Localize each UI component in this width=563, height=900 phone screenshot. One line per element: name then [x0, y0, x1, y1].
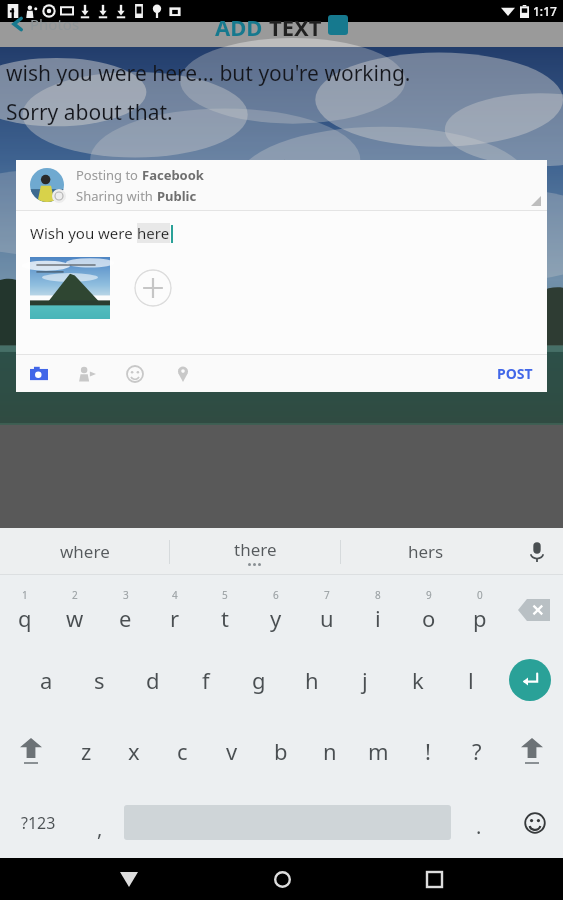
staticText: POST: [497, 364, 533, 383]
staticText: Facebook: [142, 166, 204, 184]
staticText: u: [320, 603, 334, 633]
button[interactable]: 6: [250, 575, 301, 645]
button[interactable]: 5: [200, 575, 250, 645]
staticText: ,: [97, 815, 103, 842]
button[interactable]: POST: [497, 355, 533, 392]
staticText: y: [270, 603, 282, 633]
button[interactable]: !: [403, 715, 452, 787]
staticText: 3: [123, 588, 129, 602]
staticText: c: [177, 736, 188, 766]
button[interactable]: l: [444, 645, 497, 715]
staticText: 6: [273, 588, 279, 602]
staticText: e: [119, 603, 132, 633]
button[interactable]: ,: [76, 787, 124, 858]
staticText: n: [323, 736, 337, 766]
button[interactable]: h: [285, 645, 338, 715]
staticText: l: [468, 665, 474, 695]
button[interactable]: Recent apps: [410, 858, 458, 900]
button[interactable]: [30, 257, 110, 319]
button[interactable]: d: [126, 645, 179, 715]
button[interactable]: Home: [258, 858, 306, 900]
staticText: hers: [408, 540, 444, 563]
button[interactable]: g: [232, 645, 285, 715]
staticText: Sharing with: [76, 187, 157, 205]
staticText: where: [60, 540, 110, 563]
button[interactable]: Posting to: [16, 160, 547, 210]
button[interactable]: Feeling: [122, 361, 148, 387]
button[interactable]: there: [170, 528, 340, 575]
staticText: a: [40, 665, 53, 695]
button[interactable]: x: [110, 715, 158, 787]
button[interactable]: Tag people: [74, 361, 100, 387]
staticText: 1: [22, 588, 28, 602]
staticText: k: [412, 665, 424, 695]
button[interactable]: Shift: [0, 715, 62, 787]
button[interactable]: ?123: [0, 787, 76, 858]
button[interactable]: v: [207, 715, 256, 787]
button[interactable]: Enter: [497, 645, 563, 715]
button[interactable]: 3: [100, 575, 150, 645]
staticText: 9: [426, 588, 432, 602]
button[interactable]: 0: [454, 575, 505, 645]
button[interactable]: Check in: [170, 361, 196, 387]
staticText: r: [170, 603, 180, 633]
button[interactable]: Back: [105, 858, 153, 900]
staticText: 7: [324, 588, 330, 602]
button[interactable]: s: [73, 645, 126, 715]
staticText: h: [305, 665, 319, 695]
button[interactable]: f: [179, 645, 232, 715]
staticText: z: [81, 736, 92, 766]
button[interactable]: Shift: [501, 715, 563, 787]
button[interactable]: .: [451, 787, 507, 858]
staticText: ?123: [21, 812, 56, 834]
button[interactable]: Add photo: [26, 361, 52, 387]
staticText: .: [476, 813, 482, 840]
button[interactable]: 9: [403, 575, 454, 645]
button[interactable]: c: [158, 715, 207, 787]
staticText: x: [128, 736, 140, 766]
button[interactable]: a: [20, 645, 73, 715]
button[interactable]: Emoji: [507, 787, 563, 858]
staticText: f: [202, 665, 210, 695]
staticText: 5: [222, 588, 228, 602]
staticText: TEXT: [269, 12, 322, 37]
button[interactable]: k: [391, 645, 444, 715]
staticText: t: [221, 603, 229, 633]
button[interactable]: n: [305, 715, 354, 787]
staticText: 1:17: [533, 3, 557, 19]
staticText: !: [425, 736, 431, 766]
button[interactable]: m: [354, 715, 403, 787]
staticText: Sorry about that.: [6, 98, 173, 127]
button[interactable]: z: [62, 715, 110, 787]
button[interactable]: 8: [352, 575, 403, 645]
button[interactable]: b: [256, 715, 305, 787]
staticText: p: [473, 603, 487, 633]
staticText: 0: [477, 588, 483, 602]
button[interactable]: where: [0, 528, 169, 575]
button[interactable]: Backspace: [505, 575, 563, 645]
staticText: 2: [72, 588, 78, 602]
staticText: s: [94, 665, 105, 695]
staticText: d: [146, 665, 160, 695]
staticText: w: [66, 603, 84, 633]
staticText: wish you were here... but you're working…: [6, 59, 411, 88]
staticText: Public: [157, 187, 197, 205]
button[interactable]: Add photo: [134, 269, 172, 307]
button[interactable]: 1: [0, 575, 50, 645]
staticText: here: [137, 223, 170, 243]
staticText: v: [226, 736, 238, 766]
button[interactable]: ?: [452, 715, 501, 787]
staticText: Photos: [30, 14, 80, 34]
button[interactable]: hers: [341, 528, 511, 575]
button[interactable]: j: [338, 645, 391, 715]
staticText: 8: [375, 588, 381, 602]
staticText: ?: [472, 736, 482, 766]
button[interactable]: 2: [50, 575, 100, 645]
staticText: m: [368, 736, 389, 766]
staticText: Posting to: [76, 166, 142, 184]
staticText: ADD: [215, 12, 269, 37]
button[interactable]: 4: [150, 575, 200, 645]
button[interactable]: Voice input: [511, 528, 563, 575]
button[interactable]: 7: [301, 575, 352, 645]
